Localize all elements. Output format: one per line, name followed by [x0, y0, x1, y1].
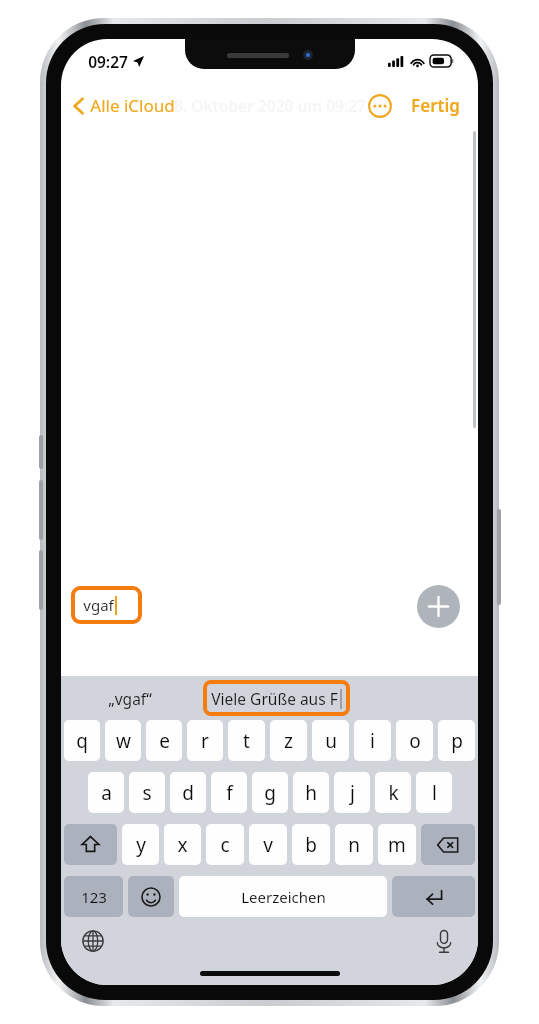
- staticText: c: [220, 832, 230, 858]
- staticText: j: [350, 780, 355, 806]
- button[interactable]: h: [293, 772, 329, 813]
- staticText: Alle iCloud: [90, 94, 175, 117]
- button[interactable]: x: [164, 824, 201, 865]
- staticText: s: [142, 780, 152, 806]
- button[interactable]: k: [375, 772, 411, 813]
- staticText: e: [159, 728, 170, 754]
- staticText: b: [305, 832, 317, 858]
- staticText: h: [305, 780, 317, 806]
- staticText: v: [263, 832, 273, 858]
- staticText: 8. Oktober 2020 um 09:27: [174, 95, 366, 116]
- staticText: m: [388, 832, 406, 858]
- button[interactable]: Diktieren: [426, 923, 462, 959]
- staticText: Fertig: [411, 94, 460, 117]
- button[interactable]: c: [206, 824, 244, 865]
- staticText: p: [451, 728, 463, 754]
- button[interactable]: r: [187, 720, 223, 761]
- staticText: n: [348, 832, 360, 858]
- button[interactable]: p: [438, 720, 475, 761]
- button[interactable]: Fertig: [409, 88, 462, 123]
- button[interactable]: a: [88, 772, 124, 813]
- button[interactable]: Hinzufügen: [417, 585, 460, 628]
- button[interactable]: e: [146, 720, 182, 761]
- staticText: a: [101, 780, 112, 806]
- staticText: w: [116, 728, 131, 754]
- button[interactable]: „vgaf“: [61, 676, 198, 720]
- staticText: Viele Grüße aus F: [211, 688, 338, 709]
- button[interactable]: w: [105, 720, 141, 761]
- staticText: u: [325, 728, 337, 754]
- button[interactable]: i: [354, 720, 391, 761]
- button[interactable]: o: [396, 720, 433, 761]
- staticText: vgaf: [83, 595, 114, 615]
- button[interactable]: Eingabe: [392, 876, 475, 917]
- staticText: d: [182, 780, 194, 806]
- staticText: l: [432, 780, 437, 806]
- staticText: Leerzeichen: [241, 887, 326, 907]
- button[interactable]: 123: [64, 876, 123, 917]
- staticText: g: [264, 780, 276, 806]
- button[interactable]: f: [211, 772, 247, 813]
- staticText: f: [226, 780, 233, 806]
- staticText: k: [388, 780, 399, 806]
- button[interactable]: b: [292, 824, 330, 865]
- button[interactable]: s: [129, 772, 165, 813]
- button[interactable]: Löschen: [421, 824, 475, 865]
- button[interactable]: Emoji: [128, 876, 174, 917]
- button[interactable]: Alle iCloud: [61, 88, 185, 123]
- button[interactable]: q: [64, 720, 100, 761]
- button[interactable]: Leerzeichen: [179, 876, 387, 917]
- staticText: o: [409, 728, 421, 754]
- button[interactable]: j: [334, 772, 370, 813]
- button[interactable]: y: [122, 824, 159, 865]
- staticText: 123: [81, 887, 107, 907]
- button[interactable]: u: [312, 720, 349, 761]
- button[interactable]: m: [378, 824, 416, 865]
- staticText: y: [136, 832, 146, 858]
- staticText: t: [243, 728, 250, 754]
- staticText: r: [201, 728, 209, 754]
- button[interactable]: d: [170, 772, 206, 813]
- button[interactable]: vgaf: [71, 586, 142, 624]
- button[interactable]: g: [252, 772, 288, 813]
- staticText: x: [177, 832, 188, 858]
- staticText: 09:27: [88, 51, 128, 72]
- button[interactable]: z: [270, 720, 307, 761]
- button[interactable]: n: [335, 824, 373, 865]
- button[interactable]: Viele Grüße aus F: [203, 680, 350, 716]
- button[interactable]: l: [416, 772, 452, 813]
- staticText: „vgaf“: [108, 688, 152, 709]
- button[interactable]: v: [249, 824, 287, 865]
- button[interactable]: Mehr: [367, 93, 393, 119]
- staticText: z: [284, 728, 293, 754]
- button[interactable]: t: [228, 720, 265, 761]
- staticText: q: [76, 728, 88, 754]
- staticText: i: [370, 728, 375, 754]
- button[interactable]: Umschalten: [64, 824, 117, 865]
- button[interactable]: Tastatur wechseln: [75, 923, 111, 959]
